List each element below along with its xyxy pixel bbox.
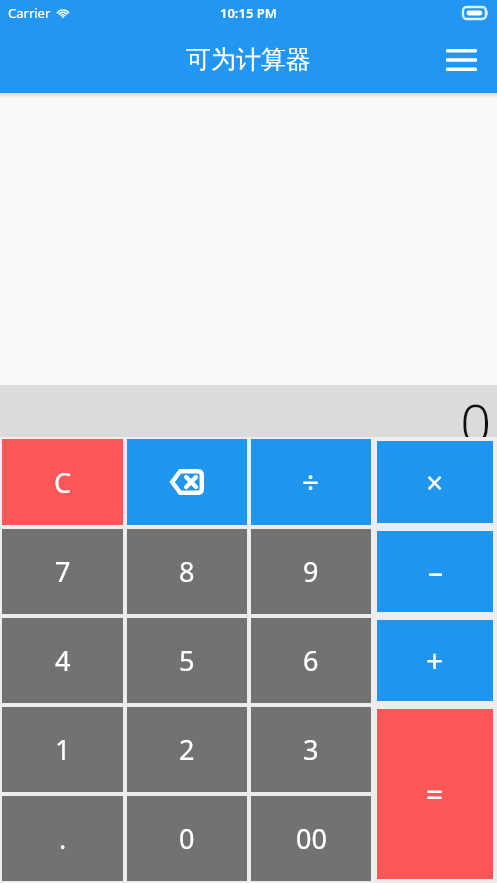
button[interactable]: + [377, 620, 493, 701]
staticText: 7 [55, 553, 71, 590]
button[interactable]: 2 [127, 707, 247, 792]
staticText: 4 [55, 642, 71, 679]
staticText: + [426, 640, 444, 681]
staticText: 可为计算器 [186, 44, 311, 75]
staticText: 6 [303, 642, 319, 679]
button[interactable]: . [2, 796, 123, 881]
staticText: 0 [179, 820, 195, 857]
button[interactable]: 5 [127, 618, 247, 703]
button[interactable]: ÷ [251, 439, 371, 525]
staticText: = [426, 774, 444, 815]
button[interactable]: 8 [127, 529, 247, 614]
button[interactable]: 00 [251, 796, 371, 881]
button[interactable]: × [377, 441, 493, 523]
staticText: × [426, 462, 444, 503]
button[interactable]: Menu [439, 38, 483, 82]
button[interactable]: 3 [251, 707, 371, 792]
staticText: 10:15 PM [220, 4, 277, 22]
button[interactable]: 9 [251, 529, 371, 614]
staticText: 0 [460, 385, 491, 437]
staticText: C [54, 464, 72, 501]
button[interactable]: – [377, 531, 493, 612]
staticText: 5 [179, 642, 195, 679]
button[interactable]: Backspace [127, 439, 247, 525]
button[interactable]: 4 [2, 618, 123, 703]
staticText: – [428, 551, 443, 592]
button[interactable]: 0 [127, 796, 247, 881]
button[interactable]: 1 [2, 707, 123, 792]
button[interactable]: C [2, 439, 123, 525]
staticText: 9 [303, 553, 319, 590]
button[interactable]: 7 [2, 529, 123, 614]
staticText: . [59, 820, 67, 857]
staticText: ÷ [302, 462, 320, 503]
button[interactable]: 6 [251, 618, 371, 703]
staticText: 2 [179, 731, 195, 768]
staticText: 3 [303, 731, 319, 768]
staticText: Carrier [8, 4, 51, 22]
staticText: 1 [55, 731, 71, 768]
staticText: 00 [296, 820, 327, 857]
staticText: 8 [179, 553, 195, 590]
button[interactable]: = [377, 709, 493, 879]
